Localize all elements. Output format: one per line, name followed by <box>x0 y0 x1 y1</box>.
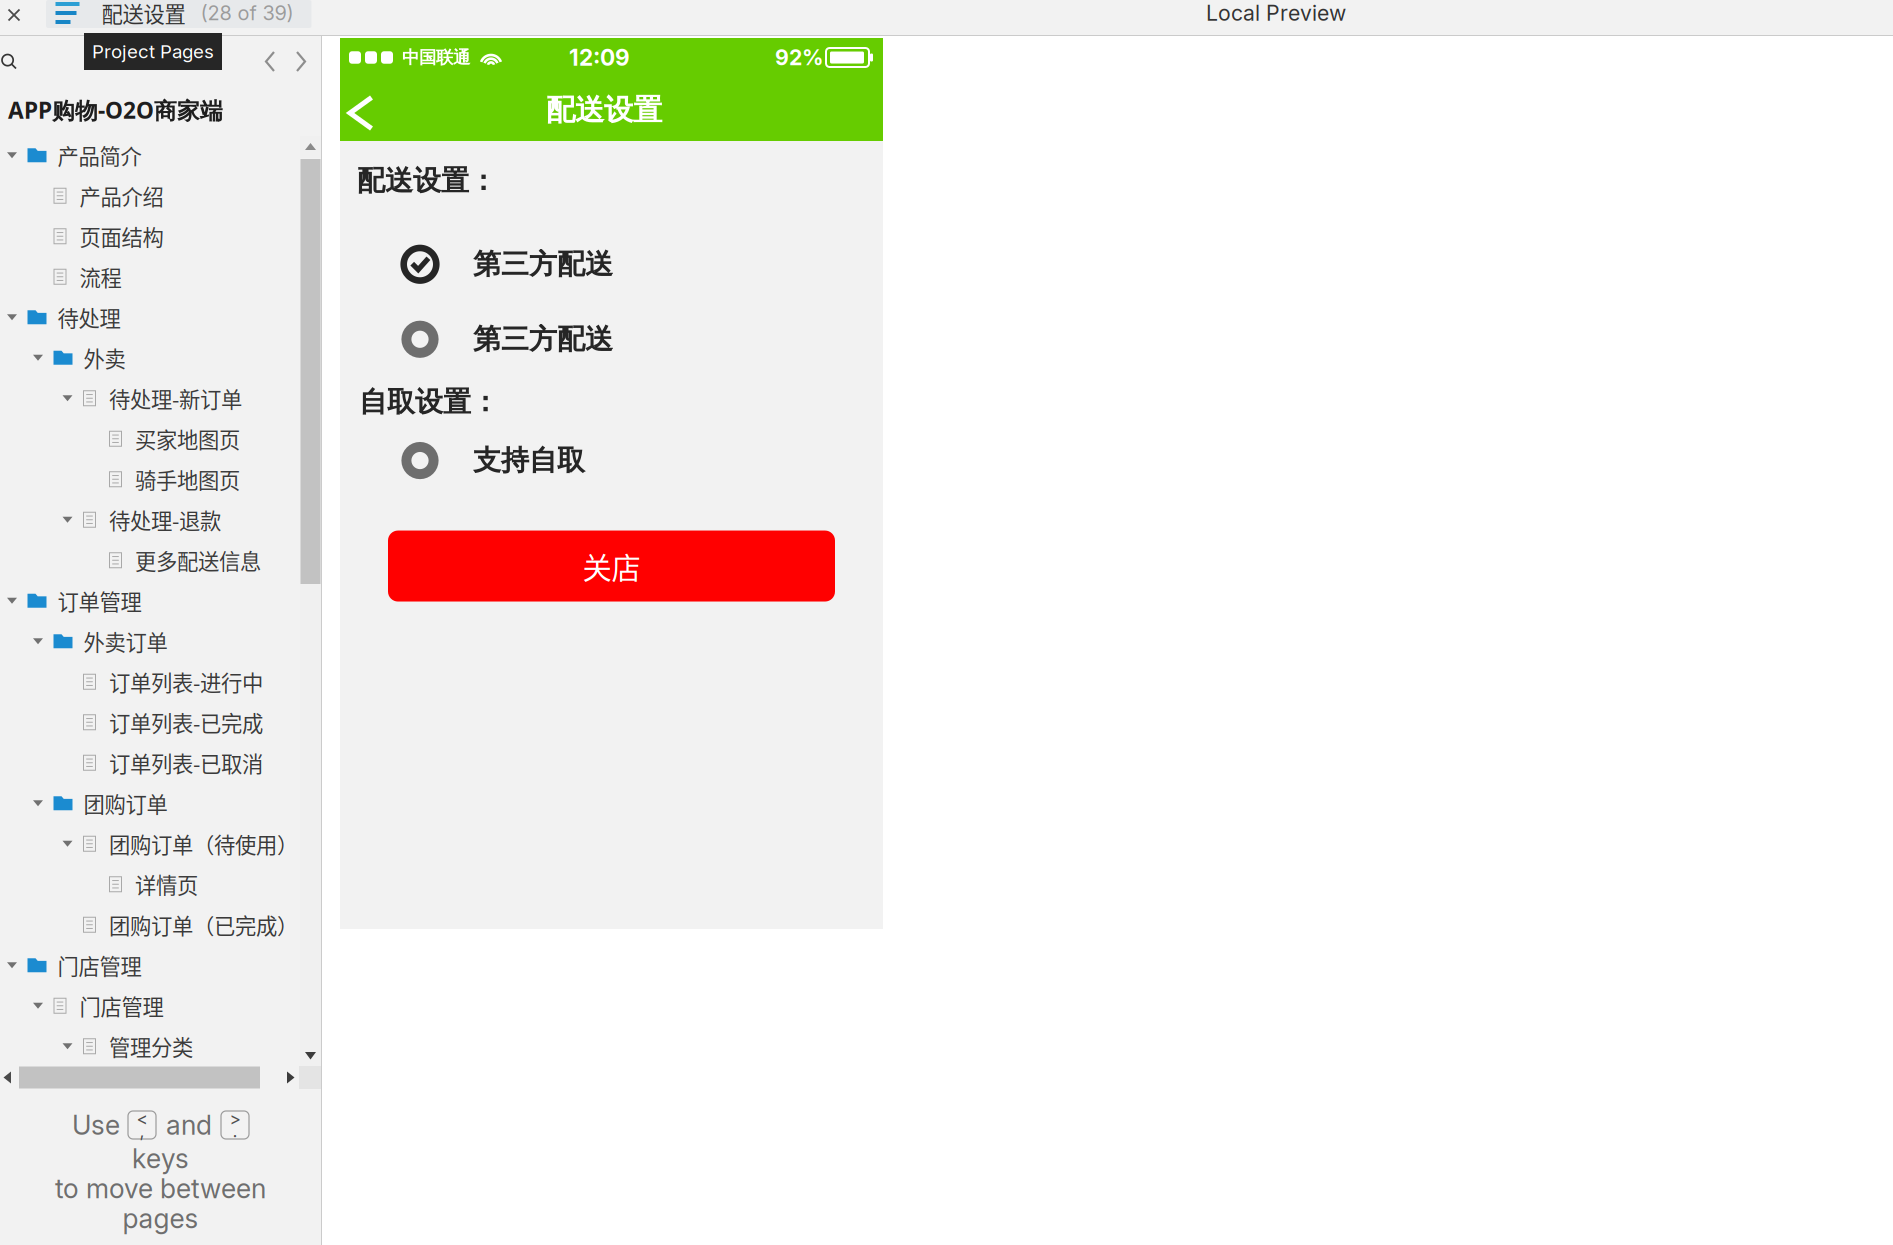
button[interactable]: Next page <box>289 48 315 76</box>
button[interactable]: 产品简介 <box>0 135 300 175</box>
staticText: , <box>139 1120 144 1141</box>
staticText: and <box>166 1109 212 1141</box>
staticText: 12:09 <box>569 44 630 71</box>
staticText: Use <box>72 1109 120 1141</box>
staticText: 产品介绍 <box>79 180 163 211</box>
staticText: 外卖 <box>83 342 125 373</box>
staticText: 门店管理 <box>57 950 141 981</box>
staticText: to move between <box>55 1172 266 1205</box>
staticText: 92% <box>775 45 823 70</box>
button[interactable]: 门店管理 <box>0 985 300 1026</box>
button[interactable]: 买家地图页 <box>0 418 300 459</box>
staticText: 流程 <box>79 261 121 292</box>
staticText: 买家地图页 <box>135 423 240 454</box>
staticText: 关店 <box>582 545 640 587</box>
staticText: keys <box>132 1142 189 1175</box>
button[interactable]: 待处理 <box>0 297 300 337</box>
staticText: 待处理 <box>57 302 120 333</box>
button[interactable]: 门店管理 <box>0 945 300 985</box>
staticText: 待处理-新订单 <box>109 383 242 414</box>
staticText: . <box>232 1120 237 1141</box>
button[interactable]: 订单列表-已完成 <box>0 702 300 742</box>
button[interactable]: 骑手地图页 <box>0 459 300 499</box>
button[interactable]: 外卖 <box>0 337 300 378</box>
button[interactable]: 配送设置 <box>46 0 311 28</box>
button[interactable]: 更多配送信息 <box>0 540 300 580</box>
button[interactable]: 订单列表-进行中 <box>0 661 300 702</box>
button[interactable]: Scroll down <box>300 1044 321 1066</box>
button[interactable]: 管理分类 <box>0 1026 300 1066</box>
staticText: 详情页 <box>135 869 198 900</box>
button[interactable]: 产品介绍 <box>0 175 300 216</box>
staticText: 管理分类 <box>109 1031 193 1062</box>
staticText: 团购订单（已完成） <box>109 909 298 940</box>
button[interactable]: 支持自取 <box>340 438 883 482</box>
staticText: 订单列表-进行中 <box>109 666 263 697</box>
staticText: 产品简介 <box>57 140 141 171</box>
staticText: 订单列表-已完成 <box>109 707 263 738</box>
staticText: 骑手地图页 <box>135 464 240 495</box>
button[interactable]: 订单列表-已取消 <box>0 742 300 783</box>
button[interactable]: Search <box>1 48 25 76</box>
button[interactable]: 页面结构 <box>0 216 300 256</box>
staticText: Local Preview <box>1206 0 1346 26</box>
staticText: > <box>229 1108 240 1129</box>
button[interactable]: Back <box>346 93 376 133</box>
staticText: 支持自取 <box>473 443 585 478</box>
button[interactable]: Scroll right <box>280 1066 299 1089</box>
staticText: 待处理-退款 <box>109 504 221 535</box>
button[interactable]: 团购订单 <box>0 783 300 823</box>
button[interactable]: 关店 <box>388 530 835 601</box>
staticText: 第三方配送 <box>473 322 613 357</box>
staticText: 订单列表-已取消 <box>109 747 263 778</box>
button[interactable]: 待处理-退款 <box>0 499 300 540</box>
staticText: < <box>136 1108 147 1129</box>
button[interactable]: 第三方配送 <box>340 242 883 286</box>
button[interactable]: 流程 <box>0 256 300 297</box>
staticText: (28 of 39) <box>200 1 293 25</box>
staticText: 门店管理 <box>79 990 163 1021</box>
staticText: 团购订单（待使用） <box>109 828 298 859</box>
button[interactable]: 详情页 <box>0 864 300 904</box>
staticText: 配送设置 <box>101 0 185 28</box>
button[interactable]: 团购订单（已完成） <box>0 904 300 945</box>
button[interactable]: 待处理-新订单 <box>0 378 300 418</box>
staticText: 团购订单 <box>83 788 167 819</box>
staticText: 更多配送信息 <box>135 545 261 576</box>
staticText: pages <box>122 1202 198 1235</box>
staticText: 中国联通 <box>402 47 470 68</box>
staticText: 订单管理 <box>57 585 141 616</box>
button[interactable]: Previous page <box>257 48 283 76</box>
staticText: 自取设置： <box>359 384 499 420</box>
button[interactable]: 第三方配送 <box>340 317 883 361</box>
button[interactable]: Scroll up <box>300 136 321 158</box>
staticText: 页面结构 <box>79 221 163 252</box>
staticText: 外卖订单 <box>83 626 167 657</box>
staticText: 第三方配送 <box>473 247 613 282</box>
staticText: 配送设置 <box>546 91 662 128</box>
button[interactable]: 团购订单（待使用） <box>0 823 300 864</box>
button[interactable]: 订单管理 <box>0 580 300 621</box>
button[interactable]: Close <box>1 0 27 28</box>
staticText: APP购物-O2O商家端 <box>8 94 223 125</box>
button[interactable]: 外卖订单 <box>0 621 300 661</box>
button[interactable]: Scroll left <box>0 1066 17 1089</box>
staticText: Project Pages <box>92 40 214 63</box>
staticText: 配送设置： <box>357 163 497 198</box>
